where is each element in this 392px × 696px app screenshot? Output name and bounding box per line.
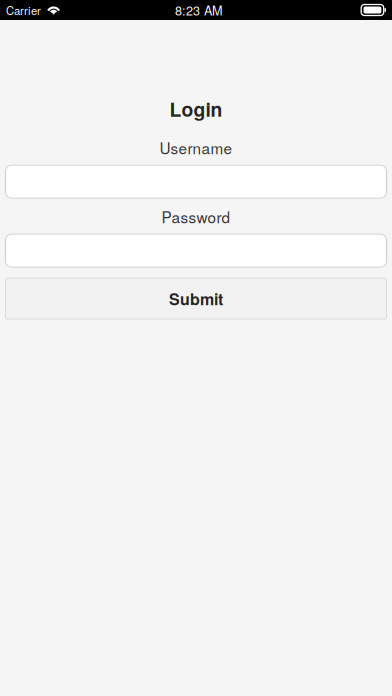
staticText: Username bbox=[159, 137, 232, 159]
staticText: Submit bbox=[169, 287, 223, 310]
staticText: Password bbox=[161, 206, 230, 228]
button[interactable]: Password bbox=[5, 234, 387, 268]
staticText: Login bbox=[169, 95, 222, 123]
button[interactable]: Username bbox=[5, 165, 387, 199]
staticText: Carrier bbox=[6, 2, 41, 18]
staticText: 8:23 AM bbox=[175, 1, 223, 19]
button[interactable]: Submit bbox=[5, 278, 387, 320]
